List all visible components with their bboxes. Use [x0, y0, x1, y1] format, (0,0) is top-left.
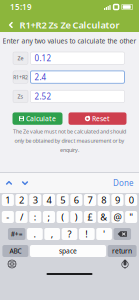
- button[interactable]: ?: [62, 228, 77, 240]
- staticText: 2.52: [34, 91, 51, 102]
- button[interactable]: 9: [111, 194, 123, 206]
- staticText: Zs: [17, 93, 23, 100]
- staticText: 6: [74, 194, 79, 206]
- button[interactable]: .: [27, 228, 43, 240]
- button[interactable]: 6: [70, 194, 82, 206]
- staticText: 3: [33, 194, 38, 206]
- staticText: .: [33, 228, 36, 240]
- staticText: 7: [88, 194, 93, 206]
- staticText: 2: [19, 194, 24, 206]
- button[interactable]: ;: [43, 211, 55, 223]
- button[interactable]: Reset: [68, 112, 126, 125]
- button[interactable]: ': [96, 228, 112, 240]
- staticText: space: [59, 247, 77, 255]
- staticText: return: [112, 247, 132, 255]
- staticText: &: [100, 211, 107, 223]
- staticText: @: [113, 211, 121, 223]
- button[interactable]: ,: [44, 228, 60, 240]
- staticText: 5: [60, 194, 65, 206]
- button[interactable]: 4: [43, 194, 55, 206]
- button[interactable]: Back: [4, 18, 18, 32]
- staticText: 8: [101, 194, 106, 206]
- staticText: £: [88, 211, 93, 223]
- staticText: (: [61, 211, 64, 223]
- button[interactable]: Next field: [21, 178, 29, 188]
- button[interactable]: £: [84, 211, 96, 223]
- button[interactable]: Delete: [113, 228, 131, 240]
- staticText: 0.12: [34, 53, 51, 63]
- staticText: ): [75, 211, 78, 223]
- staticText: only be obtained by direct measurement o…: [14, 137, 124, 144]
- button[interactable]: 8: [98, 194, 110, 206]
- staticText: ;: [47, 211, 50, 223]
- button[interactable]: Dictate: [119, 258, 131, 270]
- button[interactable]: :: [29, 211, 41, 223]
- staticText: -: [6, 211, 9, 223]
- staticText: :: [34, 211, 37, 223]
- staticText: Calculate: [26, 114, 56, 123]
- button[interactable]: space: [30, 245, 106, 257]
- button[interactable]: &: [98, 211, 110, 223]
- button[interactable]: /: [15, 211, 28, 223]
- button[interactable]: Change keyboard: [6, 258, 18, 270]
- button[interactable]: Done: [113, 178, 134, 188]
- button[interactable]: 0: [125, 194, 137, 206]
- staticText: ': [103, 228, 105, 240]
- staticText: Reset: [92, 114, 110, 123]
- staticText: !: [85, 228, 88, 240]
- staticText: ": [129, 211, 133, 223]
- button[interactable]: Calculate: [12, 112, 62, 125]
- staticText: ABC: [9, 247, 21, 255]
- staticText: 4: [46, 194, 51, 206]
- staticText: Done: [113, 178, 134, 188]
- button[interactable]: 7: [84, 194, 96, 206]
- staticText: 1: [5, 194, 10, 206]
- button[interactable]: @: [111, 211, 123, 223]
- staticText: ?: [67, 228, 71, 240]
- staticText: /: [20, 211, 23, 223]
- staticText: 0: [129, 194, 134, 206]
- staticText: 9: [115, 194, 120, 206]
- button[interactable]: #+=: [8, 228, 25, 240]
- button[interactable]: Previous field: [5, 178, 13, 188]
- button[interactable]: -: [2, 211, 14, 223]
- staticText: ,: [51, 228, 54, 240]
- staticText: Ze: [17, 55, 23, 62]
- button[interactable]: ": [125, 211, 137, 223]
- staticText: The Ze value must not be calculated and …: [13, 128, 126, 135]
- button[interactable]: 3: [29, 194, 41, 206]
- staticText: Enter any two values to calculate the ot…: [2, 37, 136, 45]
- staticText: 15:19: [10, 2, 32, 12]
- button[interactable]: ): [70, 211, 82, 223]
- staticText: 2.4: [34, 72, 46, 82]
- button[interactable]: return: [108, 245, 137, 257]
- button[interactable]: (: [57, 211, 69, 223]
- button[interactable]: 1: [2, 194, 14, 206]
- staticText: R1+R2: [13, 74, 28, 81]
- button[interactable]: 5: [57, 194, 69, 206]
- staticText: #+=: [11, 230, 23, 238]
- button[interactable]: ABC: [2, 245, 28, 257]
- staticText: enquiry.: [60, 146, 79, 153]
- button[interactable]: 2: [15, 194, 28, 206]
- staticText: R1+R2 Zs Ze Calculator: [19, 19, 119, 31]
- button[interactable]: !: [79, 228, 95, 240]
